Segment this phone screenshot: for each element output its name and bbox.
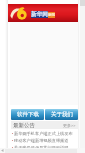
- button[interactable]: 移动客户端新增视频直播频道: [11, 137, 78, 144]
- other: Vertical scroll bar: [80, 0, 85, 153]
- other: Horizontal scroll bar: [0, 148, 85, 153]
- button[interactable]: 最新公告: [11, 121, 78, 129]
- button[interactable]: 软件下载: [11, 109, 44, 120]
- staticText: 移动客户端新增视频直播频道: [14, 138, 69, 143]
- staticText: 更多>>: [63, 123, 76, 128]
- staticText: 软件下载: [17, 111, 39, 118]
- staticText: 关于我们: [51, 111, 73, 118]
- staticText: 新华网手机客户端正式上线发布: [14, 131, 73, 136]
- staticText: 最新公告: [13, 122, 35, 129]
- button[interactable]: 关于我们: [45, 109, 78, 120]
- staticText: 新闻: [48, 13, 55, 17]
- button[interactable]: 新华网手机客户端正式上线发布: [11, 130, 78, 137]
- button[interactable]: 关于账号登录异常问题的说明: [11, 144, 78, 151]
- staticText: 关于账号登录异常问题的说明: [14, 145, 69, 150]
- staticText: 新华网: [31, 11, 48, 18]
